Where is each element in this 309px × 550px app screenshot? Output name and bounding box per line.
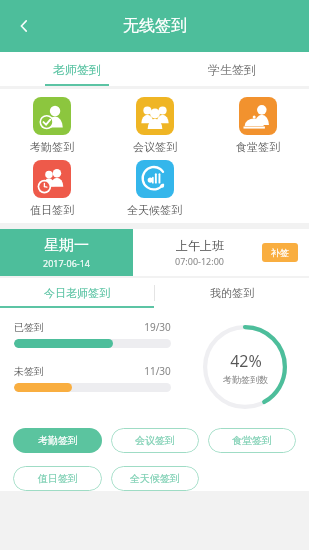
- staticText: 星期一: [44, 236, 89, 255]
- staticText: 考勤签到数: [223, 374, 268, 385]
- button[interactable]: 学生签到: [154, 52, 309, 86]
- staticText: 07:00-12:00: [175, 255, 224, 267]
- button[interactable]: 老师签到: [0, 52, 154, 86]
- staticText: 未签到: [14, 365, 44, 378]
- button[interactable]: 星期一: [0, 229, 133, 276]
- button[interactable]: 考勤签到: [0, 97, 103, 154]
- staticText: 考勤签到: [38, 434, 78, 447]
- staticText: 19/30: [144, 320, 171, 334]
- button[interactable]: 全天候签到: [103, 160, 206, 217]
- staticText: 今日老师签到: [44, 286, 110, 300]
- button[interactable]: 全天候签到: [111, 466, 199, 491]
- staticText: 42%: [230, 350, 262, 372]
- staticText: 11/30: [144, 364, 171, 378]
- button[interactable]: 今日老师签到: [0, 278, 154, 308]
- button[interactable]: 我的签到: [155, 278, 309, 308]
- button[interactable]: 食堂签到: [208, 428, 296, 453]
- staticText: 2017-06-14: [43, 257, 90, 269]
- staticText: 学生签到: [208, 62, 256, 77]
- button[interactable]: Back: [6, 8, 42, 44]
- staticText: 会议签到: [135, 434, 175, 447]
- staticText: 我的签到: [210, 286, 254, 300]
- button[interactable]: 食堂签到: [206, 97, 309, 154]
- staticText: 老师签到: [53, 62, 101, 77]
- button[interactable]: 值日签到: [0, 160, 103, 217]
- button[interactable]: 会议签到: [111, 428, 199, 453]
- staticText: 值日签到: [30, 203, 74, 217]
- staticText: 已签到: [14, 321, 44, 334]
- staticText: 补签: [271, 247, 289, 258]
- button[interactable]: 补签: [262, 243, 298, 262]
- staticText: 考勤签到: [30, 140, 74, 154]
- button[interactable]: 会议签到: [103, 97, 206, 154]
- staticText: 食堂签到: [232, 434, 272, 447]
- staticText: 上午上班: [176, 238, 224, 253]
- staticText: 食堂签到: [236, 140, 280, 154]
- staticText: 无线签到: [123, 16, 187, 36]
- staticText: 值日签到: [38, 472, 78, 485]
- staticText: 全天候签到: [127, 203, 182, 217]
- button[interactable]: 考勤签到: [13, 428, 102, 453]
- staticText: 会议签到: [133, 140, 177, 154]
- button[interactable]: 值日签到: [13, 466, 102, 491]
- staticText: 全天候签到: [130, 472, 180, 485]
